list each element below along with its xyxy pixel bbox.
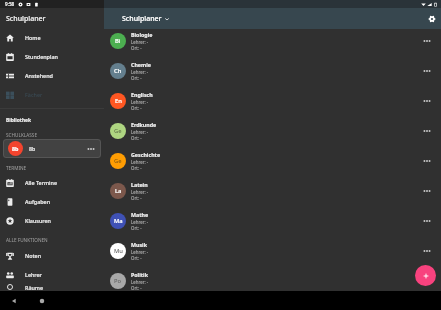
staticText: Anstehend: [25, 72, 53, 79]
staticText: Ge: [114, 127, 122, 135]
button[interactable]: Ge: [104, 119, 441, 149]
staticText: Lehrer: -: [131, 99, 149, 105]
staticText: Chemie: [131, 61, 151, 68]
staticText: La: [115, 187, 122, 195]
staticText: Ort: -: [131, 45, 142, 51]
staticText: Stundenplan: [25, 53, 58, 60]
button[interactable]: Mehr Optionen: [419, 153, 435, 169]
button[interactable]: Hinzufügen: [415, 265, 436, 286]
staticText: Lehrer: -: [131, 129, 149, 135]
staticText: Noten: [25, 252, 42, 259]
staticText: Schulplaner: [122, 14, 162, 24]
staticText: Politik: [131, 271, 148, 278]
button[interactable]: Aufgaben: [0, 193, 104, 212]
staticText: Ort: -: [131, 75, 142, 81]
staticText: Lehrer: [25, 271, 42, 278]
staticText: Schulplaner: [6, 14, 46, 24]
staticText: Ort: -: [131, 135, 142, 141]
button[interactable]: Ma: [104, 209, 441, 239]
staticText: 8b: [12, 145, 19, 152]
button[interactable]: Mehr Optionen: [419, 63, 435, 79]
staticText: 9:58: [5, 1, 15, 7]
staticText: Englisch: [131, 91, 153, 98]
staticText: Ge: [114, 157, 122, 165]
staticText: Lehrer: -: [131, 279, 149, 285]
staticText: Latein: [131, 181, 148, 188]
staticText: Aufgaben: [25, 198, 51, 205]
staticText: Räume: [25, 284, 44, 290]
staticText: Geschichte: [131, 151, 161, 158]
staticText: Ort: -: [131, 225, 142, 231]
staticText: Klausuren: [25, 217, 51, 224]
staticText: Lehrer: -: [131, 249, 149, 255]
staticText: Po: [114, 277, 122, 285]
staticText: Lehrer: -: [131, 39, 149, 45]
button[interactable]: Bi: [104, 29, 441, 59]
button[interactable]: Mehr Optionen: [419, 273, 435, 289]
staticText: Bi: [115, 37, 121, 45]
button[interactable]: Schulplaner: [122, 14, 170, 24]
staticText: Lehrer: -: [131, 69, 149, 75]
button[interactable]: Mehr Optionen: [419, 213, 435, 229]
button[interactable]: Anstehend: [0, 67, 104, 86]
staticText: Lehrer: -: [131, 189, 149, 195]
staticText: ALLE FUNKTIONEN: [6, 237, 48, 243]
staticText: Alle Termine: [25, 179, 57, 186]
staticText: SCHULKLASSE: [6, 132, 37, 138]
button[interactable]: Mehr Optionen: [419, 123, 435, 139]
staticText: Home: [25, 34, 41, 41]
staticText: 8b: [29, 145, 36, 152]
button[interactable]: Po: [104, 269, 441, 291]
button[interactable]: En: [104, 89, 441, 119]
staticText: Lehrer: -: [131, 159, 149, 165]
staticText: TERMINE: [6, 165, 27, 171]
button[interactable]: Alle Termine: [0, 174, 104, 193]
button[interactable]: Ch: [104, 59, 441, 89]
button[interactable]: Einstellungen: [423, 10, 440, 27]
staticText: Ort: -: [131, 285, 142, 291]
staticText: Ort: -: [131, 165, 142, 171]
button[interactable]: Home: [0, 29, 104, 48]
staticText: Ch: [114, 67, 122, 75]
button[interactable]: Mehr Optionen: [419, 243, 435, 259]
button[interactable]: Klausuren: [0, 212, 104, 231]
button[interactable]: Zurück: [6, 293, 21, 308]
other: Mehr Optionen: [87, 145, 95, 153]
staticText: Lehrer: -: [131, 219, 149, 225]
button[interactable]: Mu: [104, 239, 441, 269]
staticText: Ort: -: [131, 105, 142, 111]
button[interactable]: Ge: [104, 149, 441, 179]
button[interactable]: Mehr Optionen: [419, 93, 435, 109]
button[interactable]: Startseite: [34, 293, 49, 308]
staticText: Fächer: [25, 91, 43, 98]
button[interactable]: Räume: [0, 285, 104, 291]
staticText: Ma: [114, 217, 123, 225]
button[interactable]: Lehrer: [0, 266, 104, 285]
staticText: Erdkunde: [131, 121, 157, 128]
button[interactable]: Stundenplan: [0, 48, 104, 67]
staticText: Ort: -: [131, 195, 142, 201]
staticText: En: [115, 97, 122, 105]
button[interactable]: Noten: [0, 247, 104, 266]
staticText: Musik: [131, 241, 147, 248]
button[interactable]: Mehr Optionen: [419, 33, 435, 49]
staticText: Biologie: [131, 31, 153, 38]
button[interactable]: Fächer: [0, 86, 104, 105]
staticText: Mu: [114, 247, 123, 255]
staticText: Ort: -: [131, 255, 142, 261]
staticText: Bibliothek: [6, 117, 32, 124]
button[interactable]: 8b: [3, 139, 101, 158]
button[interactable]: Mehr Optionen: [419, 183, 435, 199]
button[interactable]: La: [104, 179, 441, 209]
staticText: Mathe: [131, 211, 149, 218]
